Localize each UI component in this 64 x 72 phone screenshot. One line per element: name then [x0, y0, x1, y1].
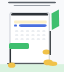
- button[interactable]: Confirm: [9, 43, 29, 49]
